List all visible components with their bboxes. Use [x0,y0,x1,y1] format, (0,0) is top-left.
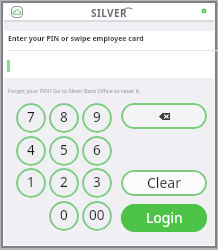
staticText: SILVER [91,6,127,19]
button[interactable]: Settings [198,5,210,17]
staticText: 8 [60,108,68,126]
button[interactable]: 9 [82,103,112,133]
button[interactable]: 5 [49,136,79,166]
button[interactable]: 4 [16,136,46,166]
button[interactable]: 3 [82,168,112,198]
button[interactable]: Login [121,204,207,232]
staticText: 3 [93,173,101,191]
staticText: 4 [27,141,35,159]
button[interactable]: 0 [49,201,79,231]
button[interactable]: 00 [82,201,112,231]
button[interactable]: 2 [49,168,79,198]
button[interactable]: Backspace [121,103,207,129]
staticText: Login [146,208,183,227]
button[interactable]: 7 [16,103,46,133]
button[interactable]: Cloud sync status [11,6,23,18]
button[interactable]: 8 [49,103,79,133]
button[interactable]: Clear [121,170,207,196]
staticText: 5 [60,141,68,159]
staticText: Enter your PIN or swipe employee card [8,34,144,44]
staticText: 7 [27,108,35,126]
staticText: 2 [60,173,68,191]
staticText: 9 [93,108,101,126]
staticText: 1 [27,173,35,191]
staticText: 00 [89,206,105,224]
button[interactable]: 1 [16,168,46,198]
staticText: Clear [147,173,181,192]
staticText: 6 [93,141,101,159]
staticText: Forgot your PIN? Go to Silver Back Offic… [8,87,141,94]
button[interactable]: 6 [82,136,112,166]
staticText: 0 [60,206,68,224]
